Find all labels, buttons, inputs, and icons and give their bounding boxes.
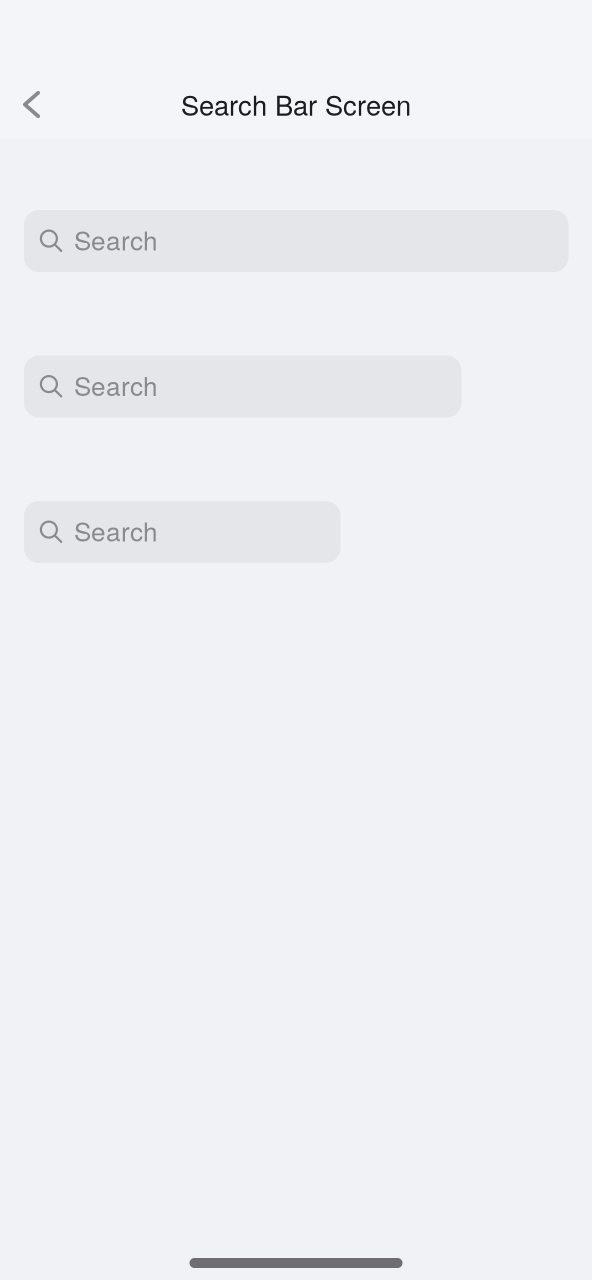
button[interactable]: Back: [3, 76, 59, 132]
button[interactable]: Search: [24, 501, 340, 563]
staticText: Search: [74, 366, 158, 403]
staticText: Search: [74, 512, 158, 549]
button[interactable]: Search: [24, 210, 568, 272]
staticText: Search: [74, 221, 158, 258]
button[interactable]: Search: [24, 355, 461, 417]
staticText: Search Bar Screen: [181, 84, 411, 123]
